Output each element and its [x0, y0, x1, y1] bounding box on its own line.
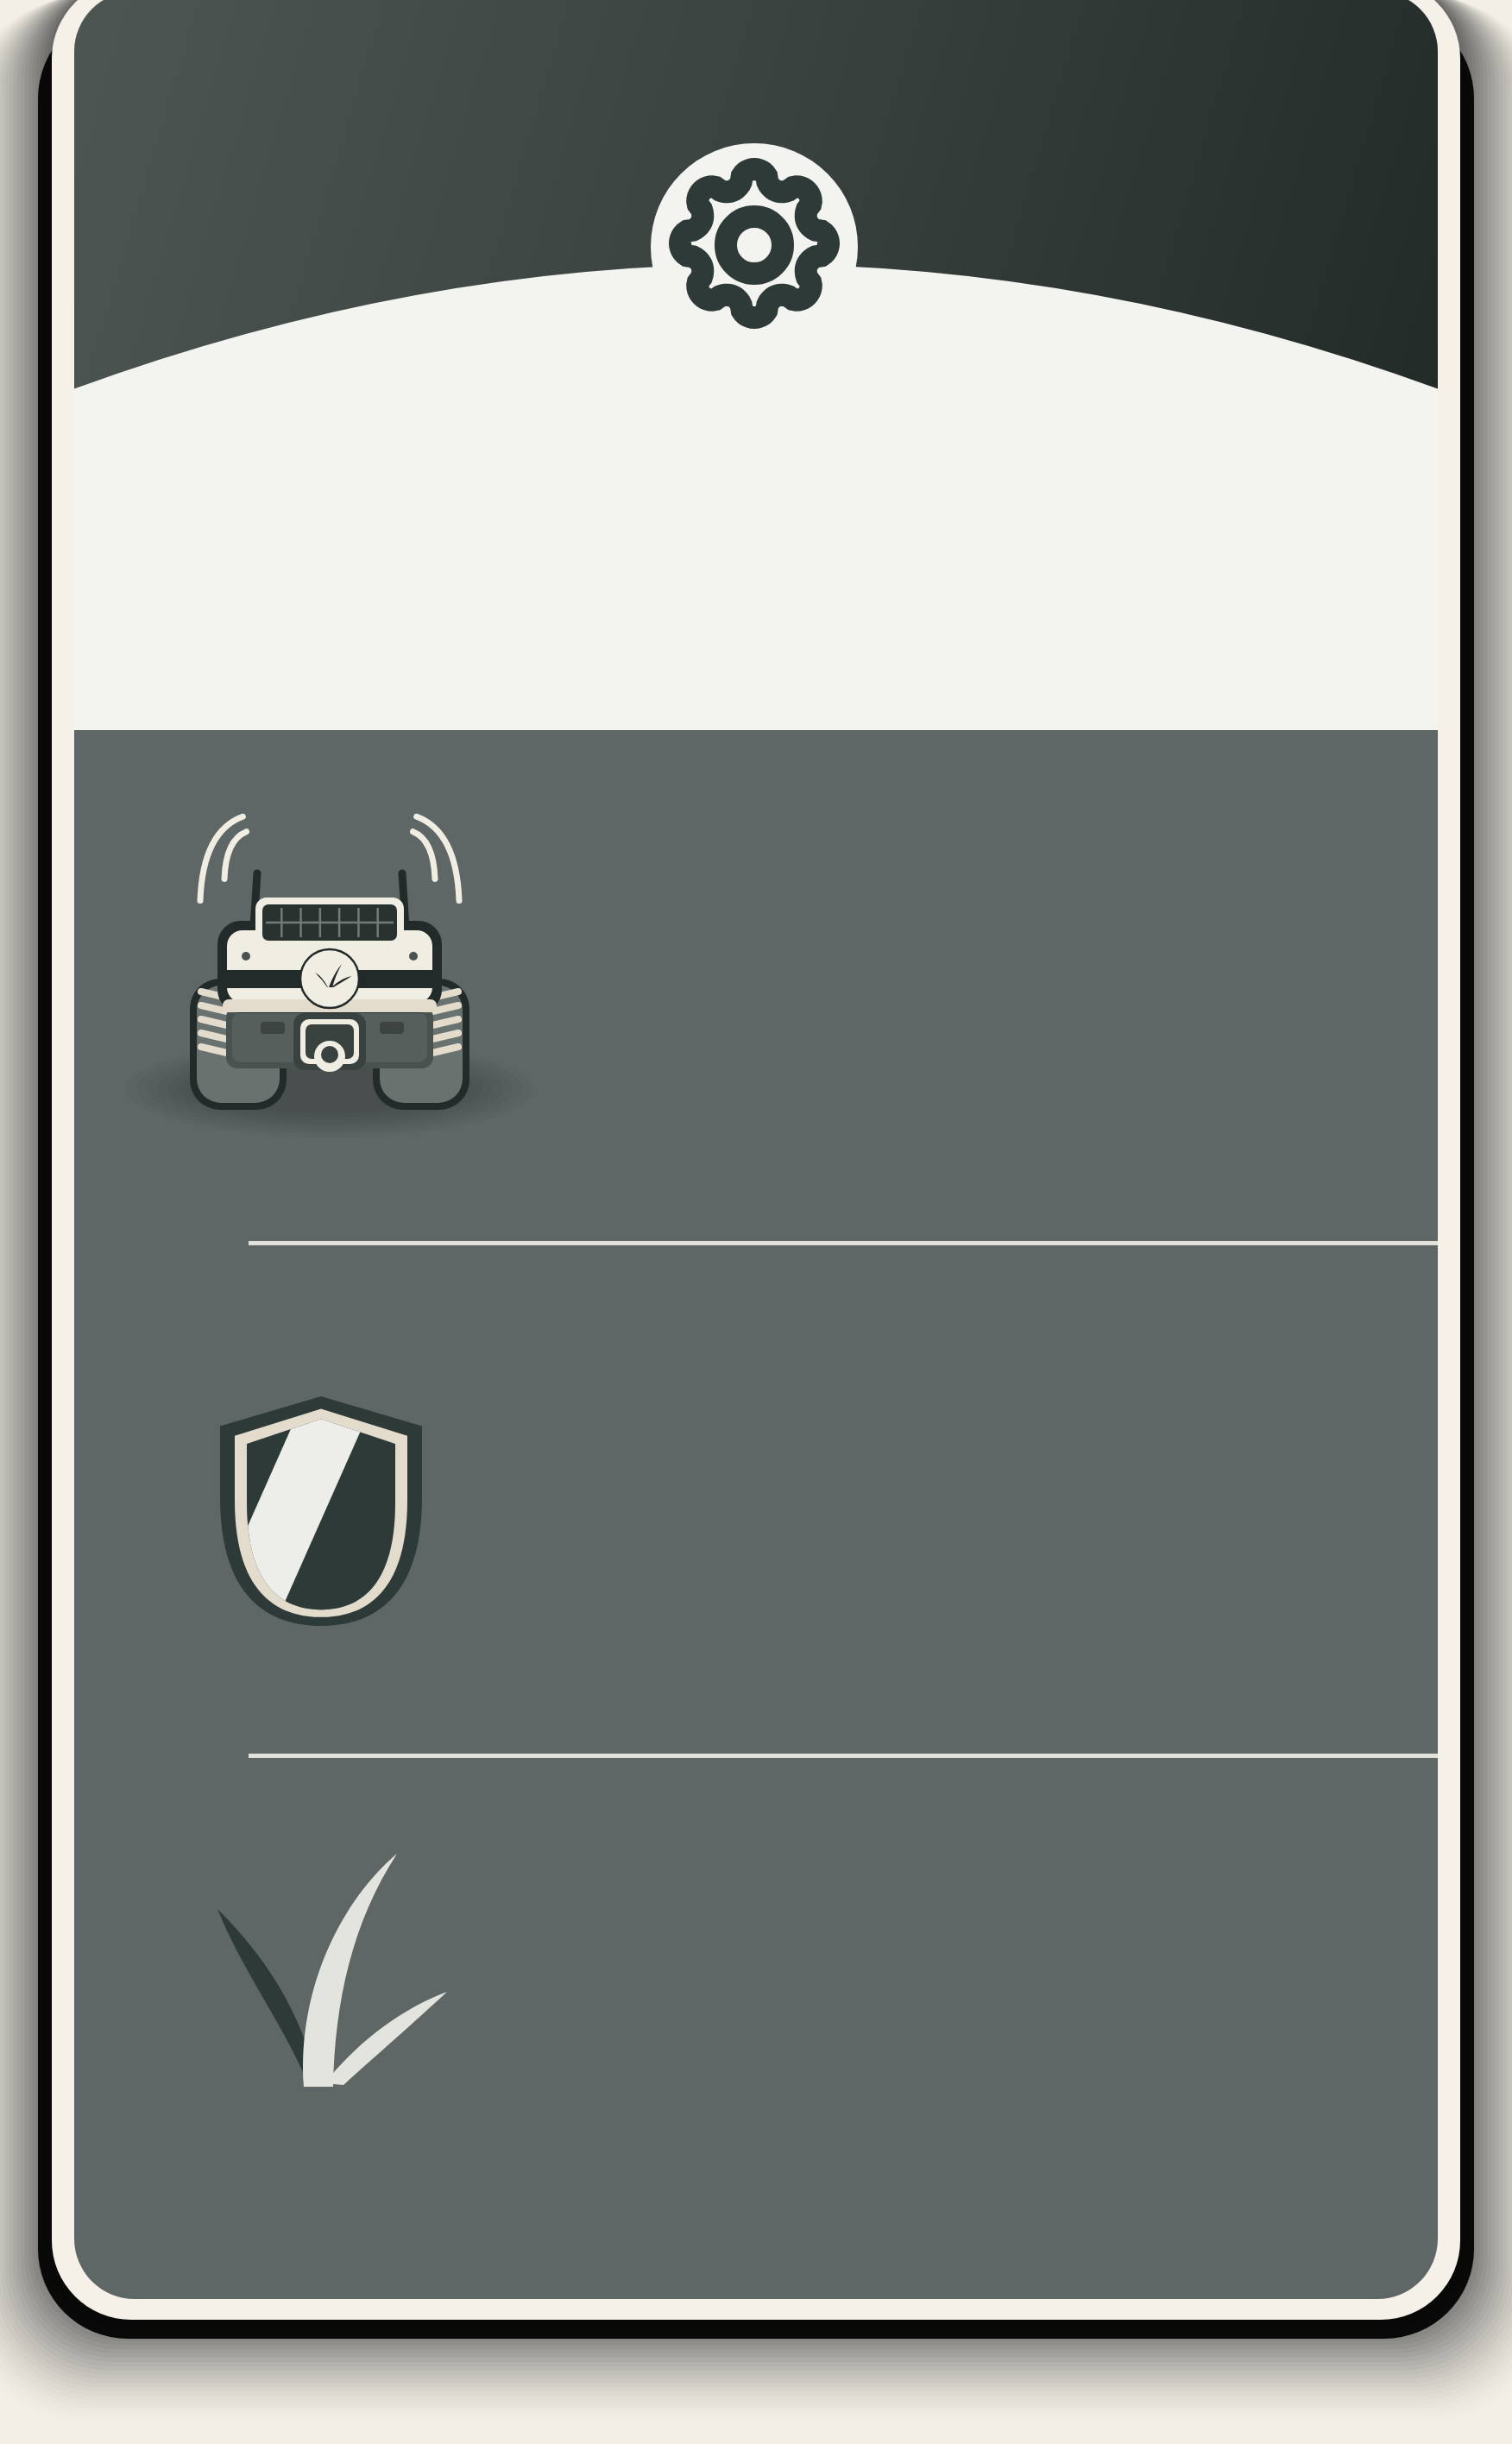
button[interactable]: Security shield: [129, 1246, 1433, 1752]
button[interactable]: Lawn care: [129, 1759, 1433, 2209]
button[interactable]: Robot mower: [129, 759, 1433, 1239]
button[interactable]: Settings: [649, 142, 860, 352]
